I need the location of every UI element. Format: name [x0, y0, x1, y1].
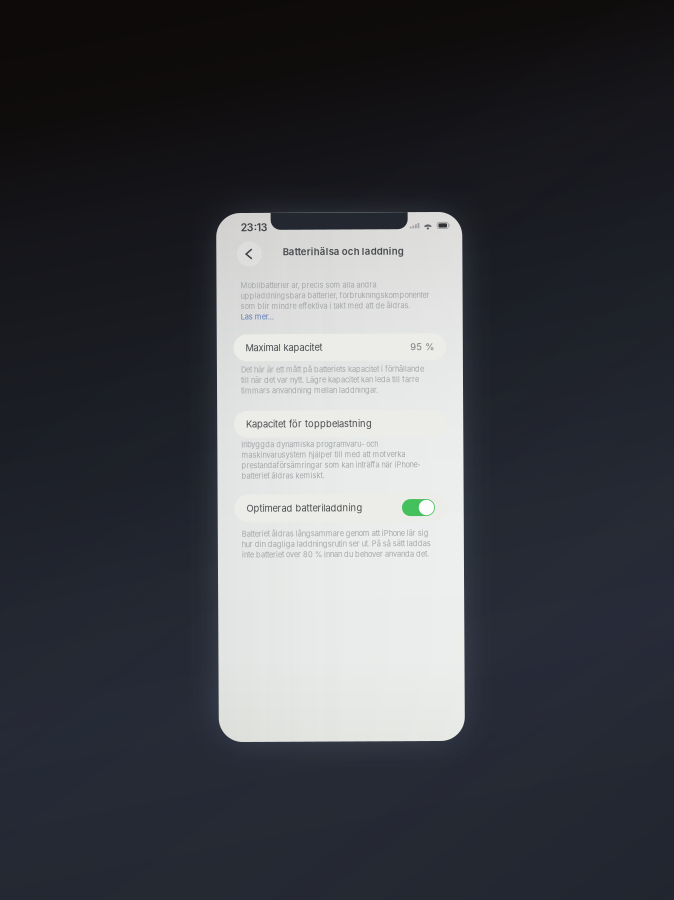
staticText: 95 %	[411, 342, 435, 353]
staticText: till när det var nytt. Lägre kapacitet k…	[241, 375, 419, 384]
staticText: maskinvarusystem hjälper till med att mo…	[241, 450, 405, 459]
staticText: Mobilbatterier är, precis som alla andra	[241, 280, 377, 289]
staticText: som blir mindre effektiva i takt med att…	[241, 301, 411, 310]
button[interactable]: Maximal kapacitet	[217, 322, 463, 361]
button[interactable]: Kapacitet för toppbelastning	[217, 395, 463, 437]
button[interactable]: Läs mer...	[217, 310, 274, 322]
staticText: 23:13	[242, 221, 269, 233]
staticText: uppladdningsbara batterier, förbruknings…	[241, 291, 430, 300]
staticText: Läs mer...	[241, 312, 274, 321]
staticText: hur din dagliga laddningsrutin ser ut. P…	[241, 539, 430, 548]
staticText: Batterihälsa och laddning	[284, 246, 405, 257]
staticText: timmars användning mellan laddningar.	[241, 386, 378, 395]
staticText: Kapacitet för toppbelastning	[246, 418, 372, 429]
button[interactable]: Back	[235, 238, 265, 268]
staticText: Batteriet åldras långsammare genom att i…	[241, 529, 428, 538]
staticText: inte batteriet över 80 % innan du behöve…	[241, 550, 428, 559]
button[interactable]: Optimerad batteriladdning	[217, 480, 463, 522]
staticText: Inbyggda dynamiska programvaru- och	[241, 440, 378, 449]
staticText: Det här är ett mått på batteriets kapaci…	[241, 365, 424, 374]
staticText: Maximal kapacitet	[246, 342, 323, 353]
staticText: batteriet åldras kemiskt.	[241, 471, 324, 480]
staticText: Optimerad batteriladdning	[246, 502, 362, 514]
staticText: prestandaförsämringar som kan inträffa n…	[241, 460, 420, 469]
